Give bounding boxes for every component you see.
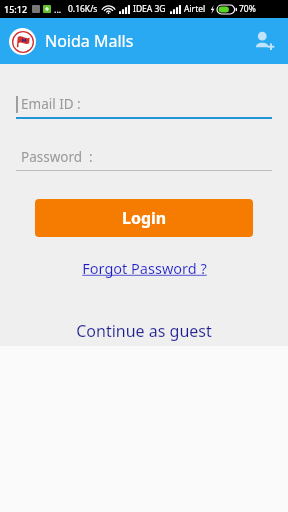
staticText: Login (122, 207, 167, 229)
button[interactable]: Forgot Password ? (74, 254, 215, 282)
staticText: ... (54, 3, 62, 15)
staticText: Noida Malls (45, 30, 134, 52)
button[interactable]: Email ID : (16, 95, 272, 119)
staticText: Forgot Password ? (82, 258, 207, 278)
button[interactable]: Password : (16, 148, 272, 171)
staticText: Airtel (184, 3, 206, 15)
staticText: Email ID : (21, 95, 81, 113)
staticText: 0.16K/s (68, 3, 98, 15)
staticText: IDEA 3G (133, 3, 166, 15)
button[interactable]: Login (35, 199, 253, 237)
button[interactable]: Sign up (249, 26, 279, 56)
staticText: 70% (239, 3, 256, 15)
staticText: Continue as guest (76, 320, 212, 342)
button[interactable]: Continue as guest (66, 315, 222, 347)
staticText: 15:12 (4, 3, 28, 15)
staticText: Password : (21, 148, 93, 166)
